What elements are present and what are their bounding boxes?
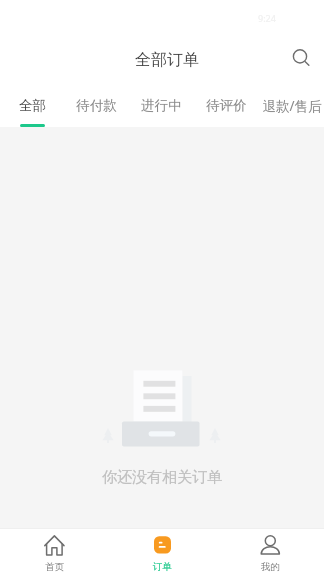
staticText: 待评价 [206, 97, 247, 114]
staticText: 全部 [19, 97, 46, 114]
button[interactable]: 进行中 [129, 82, 194, 127]
button[interactable]: 退款/售后 [259, 82, 324, 127]
staticText: 订单 [153, 561, 172, 573]
staticText: 全部订单 [135, 50, 199, 70]
staticText: 我的 [261, 561, 280, 573]
staticText: 退款/售后 [262, 97, 322, 115]
staticText: 你还没有相关订单 [102, 468, 222, 487]
staticText: 进行中 [141, 97, 182, 114]
button[interactable]: Search [282, 40, 316, 74]
staticText: 待付款 [76, 97, 117, 114]
button[interactable]: 全部 [0, 82, 64, 127]
button[interactable]: 首页 [0, 528, 108, 576]
staticText: 9:24 [258, 12, 276, 24]
button[interactable]: 待付款 [64, 82, 129, 127]
staticText: 首页 [45, 561, 64, 573]
button[interactable]: 待评价 [194, 82, 259, 127]
button[interactable]: 我的 [216, 528, 324, 576]
button[interactable]: 订单 [108, 528, 216, 576]
